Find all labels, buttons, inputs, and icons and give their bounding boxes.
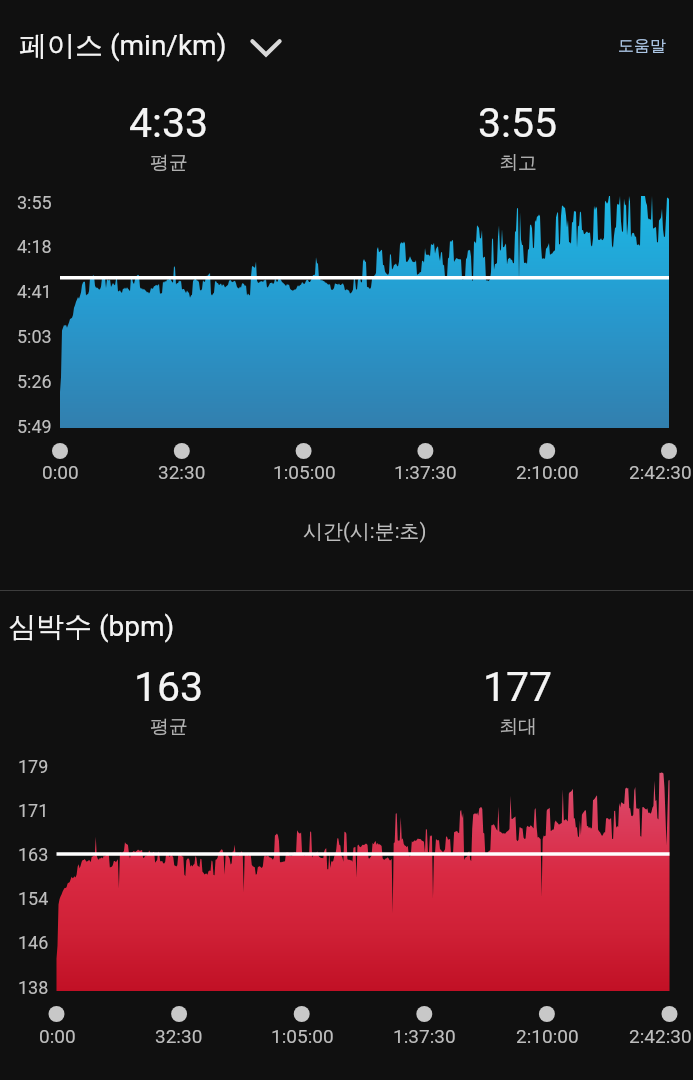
staticText: 138 — [18, 977, 49, 998]
staticText: 1:05:00 — [273, 461, 336, 483]
staticText: 146 — [18, 932, 49, 953]
staticText: 0:00 — [42, 461, 79, 483]
staticText: 2:42:30 — [629, 1025, 692, 1047]
staticText: 171 — [18, 800, 49, 821]
staticText: 32:30 — [158, 461, 206, 483]
staticText: 154 — [18, 888, 49, 909]
staticText: 5:49 — [17, 416, 52, 437]
button[interactable]: 페이스 (min/km) — [19, 27, 297, 63]
staticText: 도움말 — [618, 36, 666, 56]
staticText: 최대 — [499, 715, 537, 739]
staticText: 2:42:30 — [629, 461, 692, 483]
staticText: 163 — [18, 844, 49, 865]
staticText: 1:37:30 — [394, 461, 457, 483]
other: Change metric — [227, 27, 297, 63]
staticText: 3:55 — [17, 192, 52, 213]
staticText: 4:18 — [17, 236, 52, 257]
staticText: 177 — [483, 663, 553, 711]
staticText: 최고 — [499, 151, 537, 175]
staticText: 평균 — [150, 151, 188, 175]
staticText: 2:10:00 — [516, 1025, 579, 1047]
staticText: 4:41 — [17, 281, 52, 302]
staticText: 페이스 (min/km) — [19, 28, 227, 63]
staticText: 1:37:30 — [393, 1025, 456, 1047]
staticText: 179 — [18, 756, 49, 777]
button[interactable]: 도움말 — [618, 36, 666, 56]
staticText: 시간(시:분:초) — [303, 519, 427, 544]
staticText: 163 — [134, 663, 204, 711]
staticText: 평균 — [150, 715, 188, 739]
staticText: 5:26 — [17, 371, 52, 392]
staticText: 1:05:00 — [271, 1025, 334, 1047]
staticText: 32:30 — [155, 1025, 203, 1047]
staticText: 5:03 — [17, 326, 52, 347]
button[interactable]: 심박수 (bpm) — [8, 609, 175, 644]
staticText: 0:00 — [39, 1025, 76, 1047]
staticText: 4:33 — [129, 99, 209, 147]
staticText: 3:55 — [478, 99, 558, 147]
staticText: 2:10:00 — [516, 461, 579, 483]
staticText: 심박수 (bpm) — [8, 609, 175, 644]
